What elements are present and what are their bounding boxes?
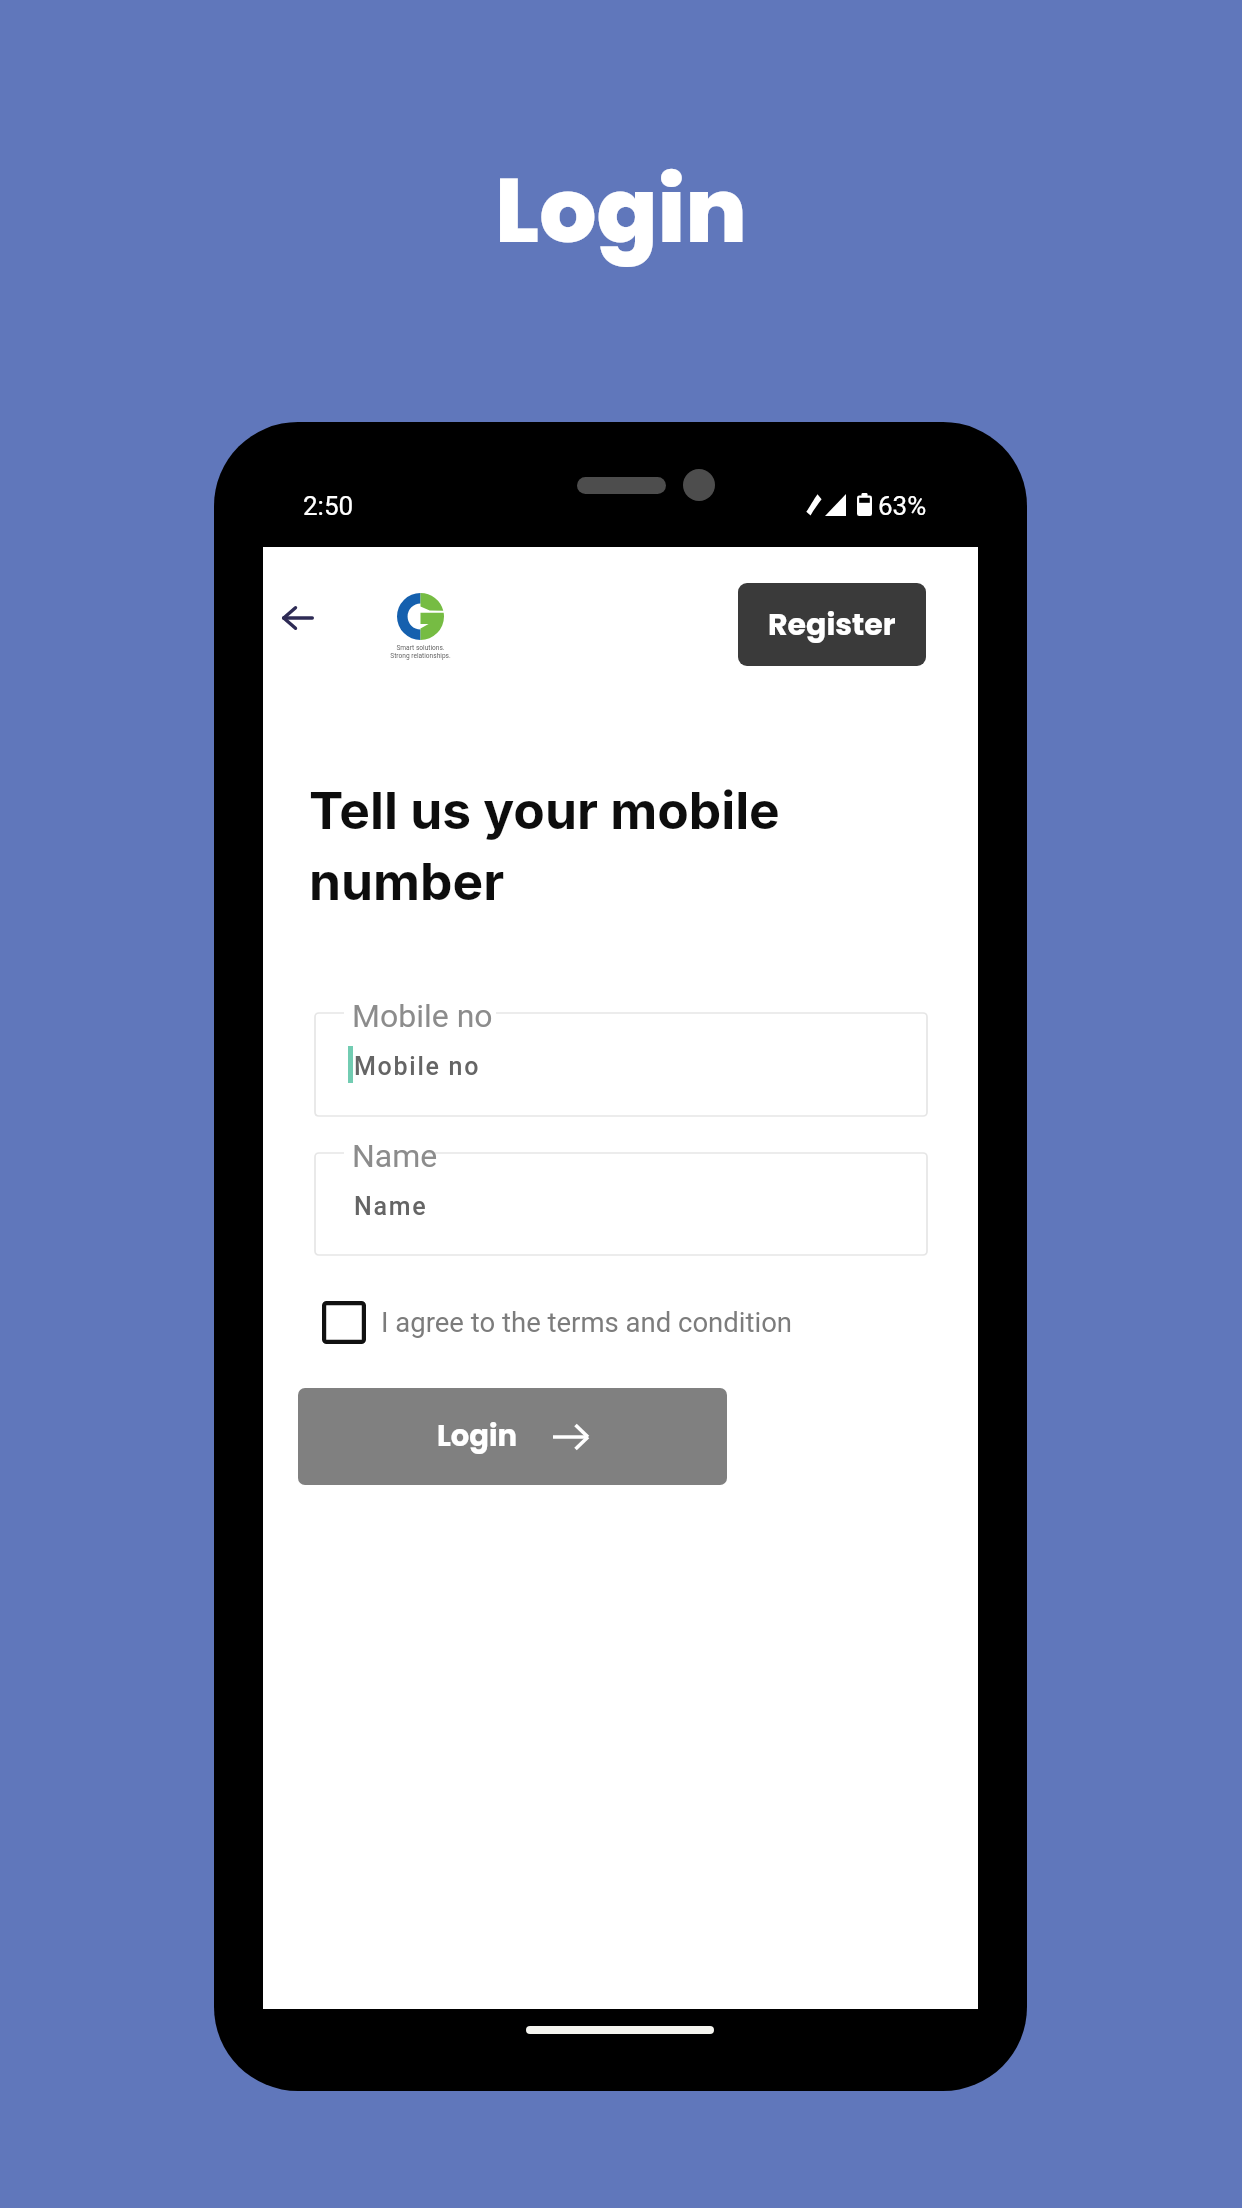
staticText: 63% <box>878 491 927 521</box>
staticText: Mobile no <box>352 997 493 1035</box>
staticText: Smart solutions. Strong relationships. <box>390 644 451 660</box>
button[interactable]: Name <box>315 1153 927 1255</box>
button[interactable]: Login <box>298 1388 727 1485</box>
button[interactable]: Mobile no <box>315 1013 927 1116</box>
staticText: Register <box>768 604 896 646</box>
button[interactable]: I agree to the terms and condition <box>322 1299 793 1345</box>
button[interactable]: Back <box>264 584 332 652</box>
staticText: Mobile no <box>354 1052 481 1081</box>
staticText: Name <box>354 1192 428 1221</box>
staticText: Login <box>437 1416 518 1457</box>
staticText: Name <box>352 1137 438 1175</box>
staticText: I agree to the terms and condition <box>381 1306 793 1338</box>
button[interactable]: Register <box>738 583 926 666</box>
staticText: Tell us your mobile number <box>309 779 780 912</box>
staticText: 2:50 <box>303 491 354 521</box>
staticText: Login <box>0 148 1242 274</box>
